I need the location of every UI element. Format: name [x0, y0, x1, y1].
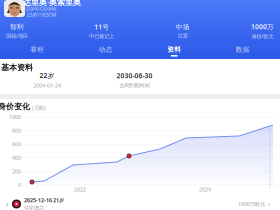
staticText: 11号 — [94, 22, 109, 31]
staticText: 赛程 — [30, 45, 44, 54]
staticText: 数据 — [236, 45, 250, 54]
staticText: 国籍/地区 — [6, 32, 28, 39]
staticText: (万欧) — [32, 104, 46, 111]
staticText: 身价变化 — [0, 102, 30, 111]
staticText: 1000 — [9, 113, 21, 121]
staticText: 2030-06-30 — [116, 71, 152, 80]
staticText: 1000万欧元 — [238, 200, 265, 208]
staticText: 动态 — [99, 45, 113, 54]
staticText: 200 — [12, 168, 21, 175]
staticText: Dario Osorio — [26, 5, 56, 12]
staticText: 2004-01-24 — [33, 82, 61, 89]
staticText: 住甲德兰 — [24, 205, 44, 210]
staticText: 2024 — [199, 186, 211, 193]
staticText: 600 — [12, 141, 21, 148]
button[interactable]: 动态 — [71, 42, 140, 60]
button[interactable]: 赛程 — [3, 42, 71, 60]
staticText: 智利 — [10, 23, 24, 31]
button[interactable]: 资料 — [140, 42, 208, 60]
staticText: 中已被记上 — [89, 33, 114, 39]
staticText: 达里奥·奥索里奥 — [23, 0, 81, 7]
staticText: 800 — [12, 127, 21, 134]
staticText: 身价/欧元 — [251, 33, 273, 40]
staticText: 2022 — [74, 186, 86, 193]
staticText: › — [268, 200, 270, 208]
staticText: 23岁/183CM — [26, 11, 56, 18]
staticText: 资料 — [167, 45, 181, 54]
staticText: 0 — [18, 181, 21, 189]
staticText: 1000万 — [251, 22, 274, 31]
button[interactable]: 数据 — [208, 42, 277, 60]
button[interactable]: ‹ — [0, 196, 280, 210]
staticText: 位置 — [178, 33, 188, 39]
staticText: 22岁 — [39, 71, 54, 80]
staticText: 400 — [12, 154, 21, 161]
staticText: 合同到期时间 — [119, 82, 149, 89]
staticText: 基本资料 — [1, 63, 33, 72]
staticText: 中场 — [176, 23, 190, 31]
staticText: 2025-12-16 21岁 — [24, 197, 64, 204]
staticText: ‹ — [6, 199, 8, 209]
